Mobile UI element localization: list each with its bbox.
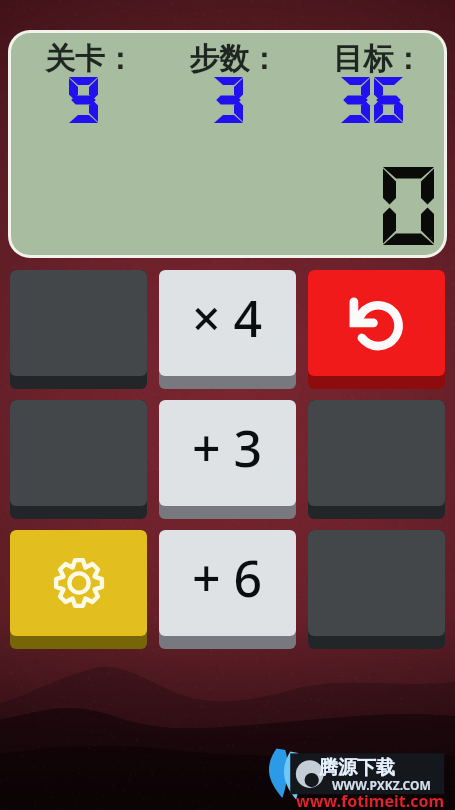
button[interactable]: + 3 — [159, 400, 296, 519]
button[interactable] — [10, 270, 147, 389]
button[interactable]: Settings — [10, 530, 147, 649]
other: Settings — [51, 555, 107, 611]
staticText: WWW.PXKZ.COM — [332, 777, 431, 793]
button[interactable]: Undo — [308, 270, 445, 389]
staticText: 步数： — [189, 40, 279, 78]
button[interactable]: × 4 — [159, 270, 296, 389]
button[interactable]: + 6 — [159, 530, 296, 649]
staticText: + 3 — [192, 414, 263, 482]
button[interactable] — [308, 530, 445, 649]
staticText: 腾源下载 — [319, 756, 395, 780]
other: Undo — [347, 293, 407, 353]
button[interactable] — [10, 400, 147, 519]
staticText: × 4 — [192, 284, 263, 352]
staticText: 关卡： — [45, 40, 135, 78]
staticText: 目标： — [333, 40, 423, 78]
staticText: www.fotimeit.com — [296, 790, 445, 810]
button[interactable] — [308, 400, 445, 519]
staticText: + 6 — [192, 544, 263, 612]
